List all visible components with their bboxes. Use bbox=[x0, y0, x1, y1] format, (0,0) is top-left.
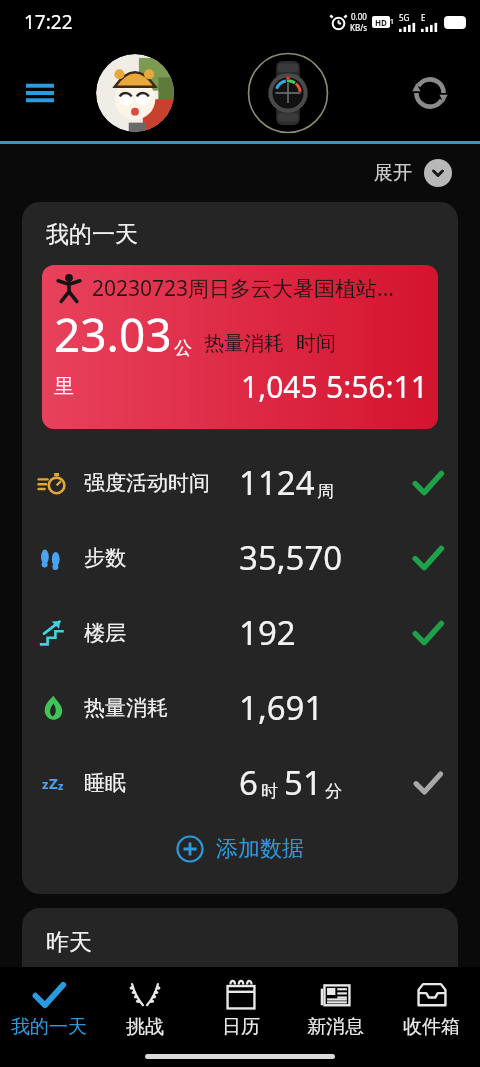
staticText: 17:22 bbox=[24, 9, 73, 35]
staticText: 1,691 bbox=[239, 685, 324, 730]
button[interactable]: 20230723周日多云大暑国植站... bbox=[42, 265, 438, 429]
staticText: 5G bbox=[399, 12, 410, 23]
button[interactable]: 步数 bbox=[22, 520, 458, 595]
button[interactable]: Profile bbox=[96, 54, 174, 132]
staticText: 挑战 bbox=[126, 1015, 164, 1039]
staticText: KB/s bbox=[350, 22, 367, 33]
staticText: 20230723周日多云大暑国植站... bbox=[92, 274, 394, 303]
staticText: 23.03 bbox=[54, 303, 172, 366]
staticText: 1 bbox=[390, 17, 395, 27]
staticText: 热量消耗 bbox=[84, 695, 168, 721]
button[interactable]: Sync bbox=[402, 65, 458, 121]
staticText: 楼层 bbox=[84, 620, 126, 646]
staticText: z bbox=[58, 778, 64, 793]
button[interactable]: 我的一天 bbox=[1, 975, 96, 1041]
staticText: 1,045 bbox=[241, 366, 318, 407]
staticText: HD bbox=[375, 17, 387, 28]
button[interactable]: Menu bbox=[12, 65, 68, 121]
staticText: 我的一天 bbox=[11, 1015, 87, 1039]
staticText: 5:56:11 bbox=[326, 366, 428, 407]
staticText: 昨天 bbox=[46, 928, 92, 957]
staticText: 192 bbox=[239, 610, 296, 655]
staticText: 分 bbox=[325, 781, 342, 802]
staticText: 强度活动时间 bbox=[84, 470, 210, 496]
staticText: 里 bbox=[54, 374, 74, 399]
button[interactable]: 收件箱 bbox=[384, 975, 479, 1041]
button[interactable]: 添加数据 bbox=[22, 820, 458, 878]
staticText: 新消息 bbox=[307, 1015, 364, 1039]
staticText: 热量消耗 bbox=[204, 331, 284, 356]
staticText: 时间 bbox=[296, 331, 336, 356]
staticText: 日历 bbox=[222, 1015, 260, 1039]
staticText: 添加数据 bbox=[216, 835, 304, 863]
button[interactable]: z bbox=[22, 745, 458, 820]
staticText: 35,570 bbox=[239, 535, 343, 580]
staticText: 1124 bbox=[239, 460, 315, 505]
staticText: Z bbox=[49, 773, 58, 793]
button[interactable]: 日历 bbox=[193, 975, 288, 1041]
staticText: E bbox=[421, 12, 426, 23]
staticText: 步数 bbox=[84, 545, 126, 571]
staticText: z bbox=[42, 775, 49, 793]
staticText: 6 bbox=[239, 760, 258, 805]
staticText: 时 bbox=[261, 781, 278, 802]
staticText: 收件箱 bbox=[403, 1015, 460, 1039]
button[interactable]: 新消息 bbox=[288, 975, 383, 1041]
staticText: 睡眠 bbox=[84, 770, 126, 796]
staticText: 我的一天 bbox=[46, 220, 138, 249]
button[interactable]: 强度活动时间 bbox=[22, 445, 458, 520]
button[interactable]: 展开 bbox=[368, 153, 458, 193]
staticText: 周 bbox=[317, 481, 334, 502]
button[interactable]: 楼层 bbox=[22, 595, 458, 670]
button[interactable]: 挑战 bbox=[97, 975, 192, 1041]
staticText: 51 bbox=[284, 760, 322, 805]
staticText: 展开 bbox=[374, 161, 412, 185]
staticText: 公 bbox=[174, 337, 192, 360]
button[interactable]: 热量消耗 bbox=[22, 670, 458, 745]
button[interactable]: Device bbox=[246, 51, 330, 135]
button[interactable]: 昨天 bbox=[22, 908, 458, 967]
staticText: 0.00 bbox=[351, 11, 367, 22]
